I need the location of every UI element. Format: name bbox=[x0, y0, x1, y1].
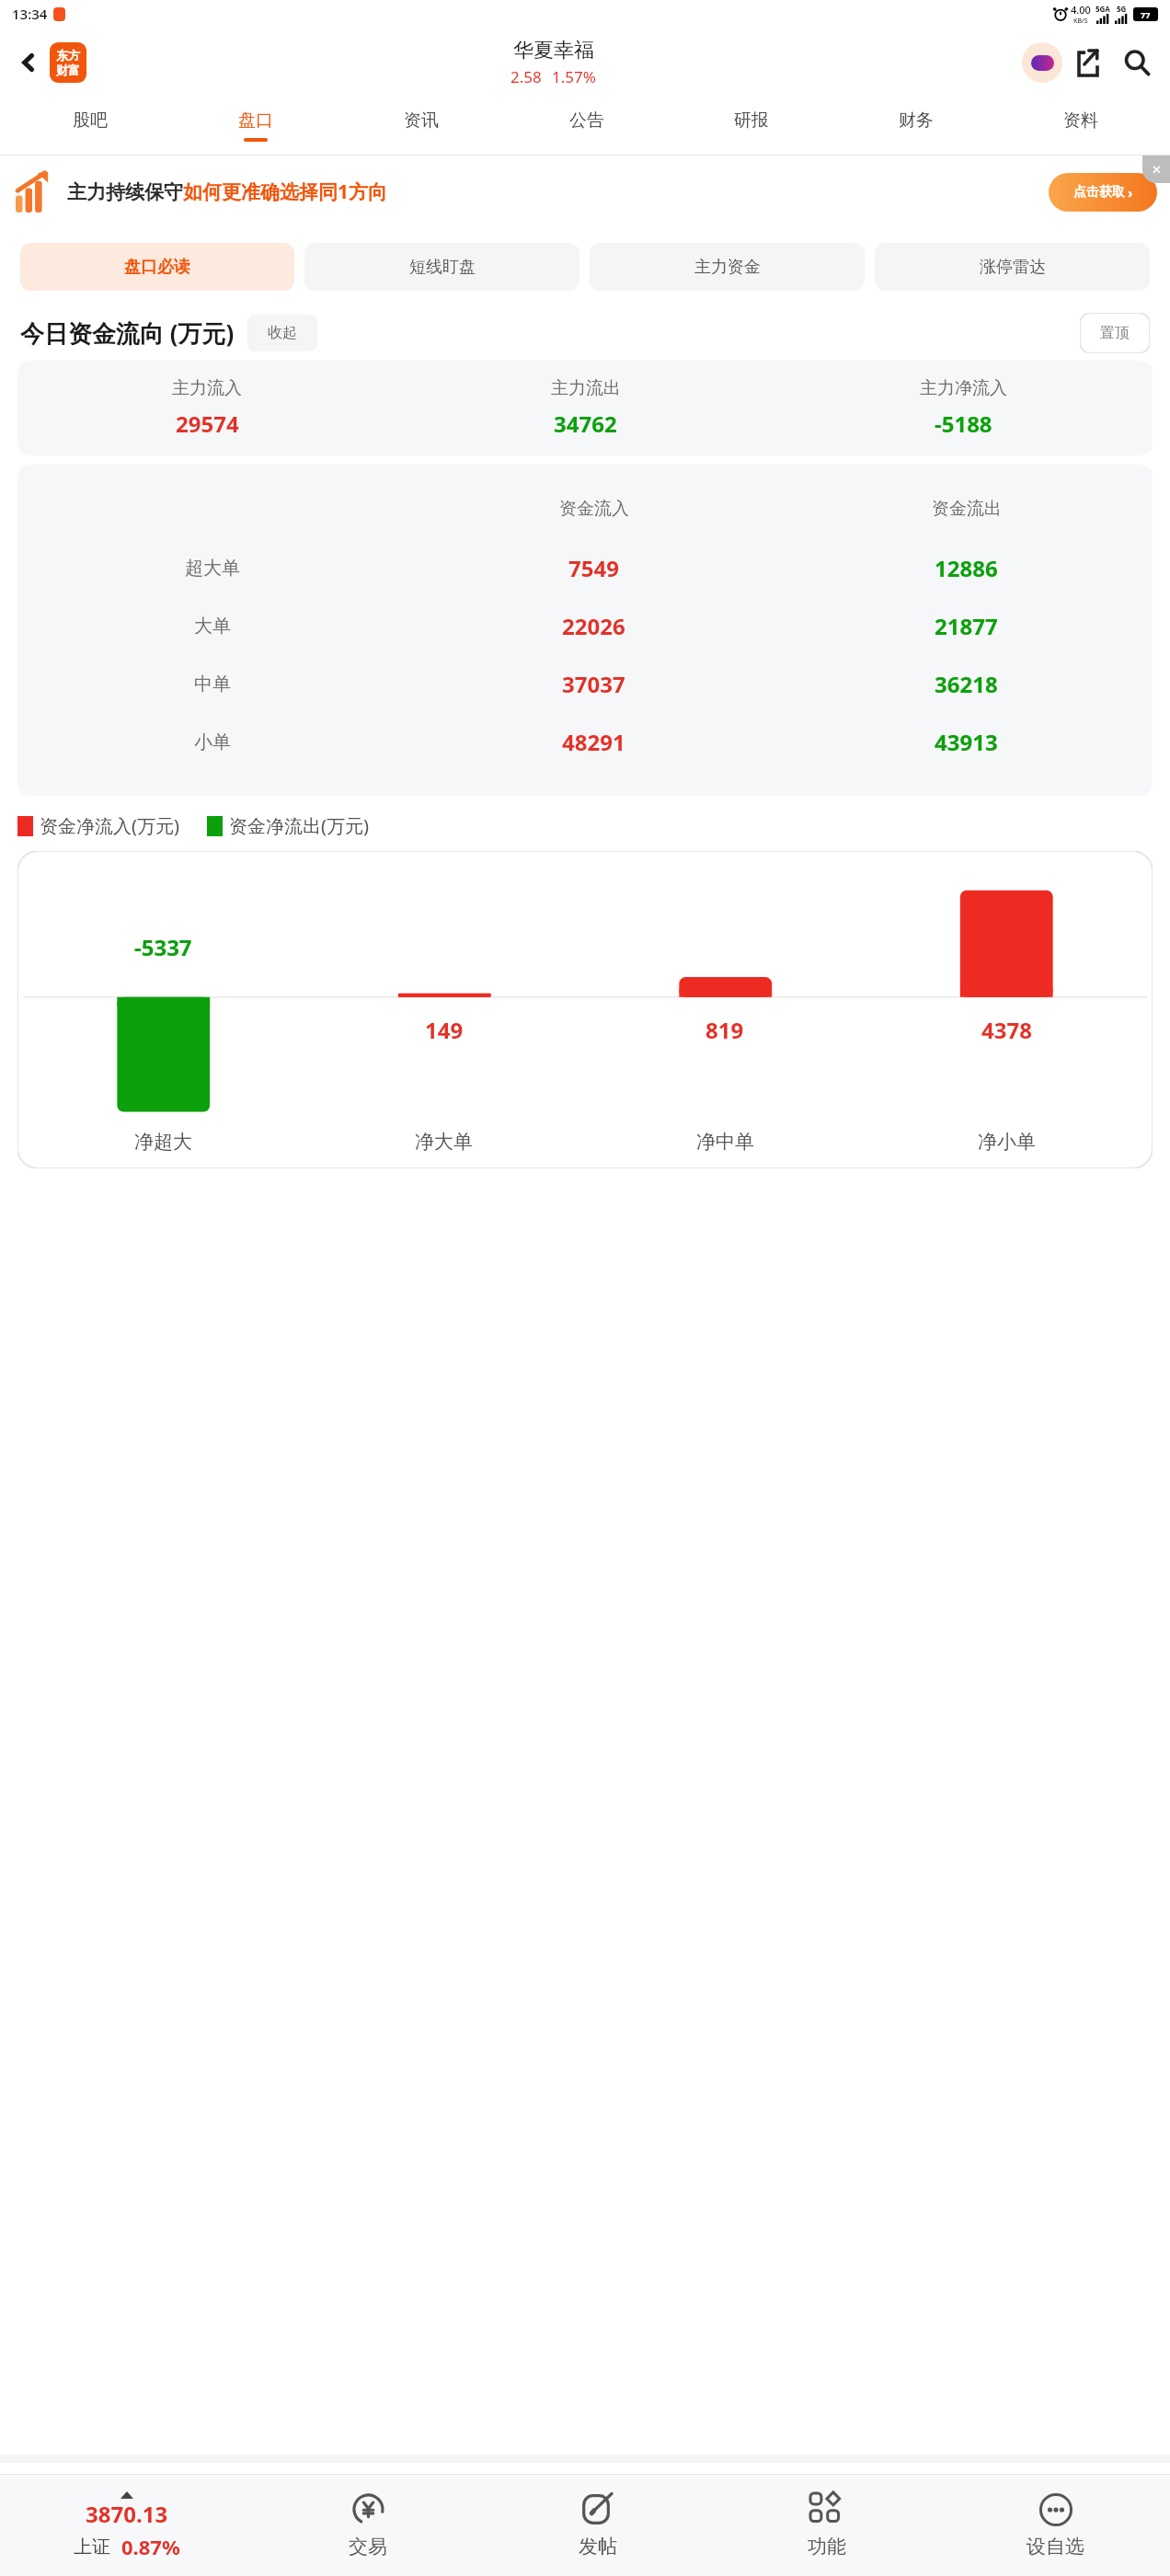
button[interactable]: 盘口 bbox=[173, 97, 338, 155]
staticText: 48291 bbox=[562, 727, 625, 757]
staticText: 12886 bbox=[935, 553, 998, 583]
staticText: 盘口 bbox=[238, 109, 273, 132]
staticText: 收起 bbox=[268, 324, 297, 342]
staticText: 29574 bbox=[176, 408, 239, 439]
staticText: KB/S bbox=[1073, 17, 1088, 26]
staticText: 资金净流出(万元) bbox=[229, 813, 369, 838]
staticText: 如何更准确选择同1方向 bbox=[183, 178, 388, 205]
button[interactable]: 发帖 bbox=[483, 2475, 712, 2576]
staticText: 净中单 bbox=[696, 1130, 754, 1154]
staticText: 小单 bbox=[194, 730, 231, 753]
staticText: ✕ bbox=[1152, 163, 1162, 177]
button[interactable]: 置顶 bbox=[1080, 313, 1150, 353]
button[interactable]: 研报 bbox=[669, 97, 833, 155]
staticText: 短线盯盘 bbox=[409, 257, 476, 278]
staticText: 东方 bbox=[56, 48, 80, 63]
staticText: 43913 bbox=[935, 727, 998, 757]
staticText: 13:34 bbox=[12, 5, 48, 23]
staticText: 5G bbox=[1117, 4, 1127, 14]
button[interactable]: 功能 bbox=[712, 2475, 941, 2576]
staticText: 36218 bbox=[935, 669, 998, 699]
button[interactable]: Search bbox=[1117, 42, 1157, 83]
staticText: 研报 bbox=[734, 109, 769, 132]
staticText: 公告 bbox=[569, 109, 604, 132]
staticText: 超大单 bbox=[185, 557, 240, 580]
staticText: 34762 bbox=[554, 408, 617, 439]
staticText: 77 bbox=[1141, 9, 1151, 20]
staticText: 点击获取 bbox=[1073, 184, 1125, 201]
button[interactable]: AI assistant bbox=[1021, 41, 1063, 84]
staticText: 3870.13 bbox=[86, 2499, 168, 2529]
staticText: 大单 bbox=[194, 615, 231, 638]
button[interactable]: East Money bbox=[50, 42, 86, 83]
staticText: 4.00 bbox=[1071, 3, 1091, 17]
button[interactable]: 涨停雷达 bbox=[875, 243, 1150, 291]
staticText: 资金流出 bbox=[932, 498, 1002, 520]
button[interactable]: Close ad bbox=[1142, 155, 1170, 183]
staticText: 4378 bbox=[981, 1015, 1032, 1045]
staticText: 置顶 bbox=[1100, 324, 1130, 342]
staticText: 财务 bbox=[899, 109, 934, 132]
button[interactable]: Back bbox=[13, 47, 44, 78]
button[interactable]: 点击获取 bbox=[1049, 173, 1157, 212]
staticText: 涨停雷达 bbox=[980, 257, 1046, 278]
staticText: 华夏幸福 bbox=[513, 38, 594, 63]
staticText: 股吧 bbox=[73, 109, 108, 132]
staticText: 上证 bbox=[74, 2536, 110, 2559]
staticText: -5188 bbox=[935, 408, 992, 439]
staticText: 净超大 bbox=[134, 1130, 192, 1154]
staticText: 2.58 bbox=[510, 66, 542, 87]
button[interactable]: 短线盯盘 bbox=[304, 243, 579, 291]
staticText: 设自选 bbox=[1027, 2535, 1084, 2559]
button[interactable]: 收起 bbox=[247, 315, 317, 351]
button[interactable]: 主力流入 bbox=[17, 361, 1153, 455]
staticText: 中单 bbox=[194, 673, 231, 696]
staticText: -5337 bbox=[134, 932, 192, 962]
button[interactable]: 公告 bbox=[504, 97, 669, 155]
staticText: 37037 bbox=[562, 669, 625, 699]
staticText: 主力资金 bbox=[694, 257, 761, 278]
button[interactable]: Share bbox=[1071, 42, 1111, 83]
button[interactable]: 盘口必读 bbox=[20, 243, 294, 291]
staticText: 0.87% bbox=[121, 2533, 180, 2560]
button[interactable]: 主力资金 bbox=[590, 243, 865, 291]
staticText: 交易 bbox=[349, 2535, 387, 2559]
button[interactable]: 交易 bbox=[253, 2475, 483, 2576]
button[interactable]: 设自选 bbox=[941, 2475, 1170, 2576]
staticText: 资金净流入(万元) bbox=[40, 813, 179, 838]
button[interactable]: 财务 bbox=[833, 97, 998, 155]
staticText: 财富 bbox=[56, 63, 80, 77]
staticText: 资料 bbox=[1063, 109, 1098, 132]
button[interactable]: 资金流入 bbox=[17, 465, 1153, 796]
staticText: 资讯 bbox=[404, 109, 439, 132]
button[interactable]: 资料 bbox=[998, 97, 1163, 155]
staticText: 资金流入 bbox=[559, 498, 629, 520]
staticText: 主力流入 bbox=[172, 377, 242, 399]
staticText: 主力持续保守 bbox=[67, 180, 183, 204]
staticText: 21877 bbox=[935, 611, 998, 641]
staticText: 盘口必读 bbox=[124, 257, 190, 278]
staticText: 7549 bbox=[568, 553, 619, 583]
button[interactable]: 3870.13 bbox=[0, 2475, 253, 2576]
staticText: 5GA bbox=[1095, 4, 1110, 14]
staticText: 主力流出 bbox=[551, 377, 621, 399]
staticText: 149 bbox=[425, 1015, 464, 1045]
staticText: 主力净流入 bbox=[920, 377, 1007, 399]
staticText: 净小单 bbox=[978, 1130, 1036, 1154]
staticText: 819 bbox=[705, 1015, 744, 1045]
staticText: 1.57% bbox=[552, 66, 596, 87]
staticText: 功能 bbox=[808, 2535, 846, 2559]
staticText: 发帖 bbox=[579, 2535, 617, 2559]
button[interactable]: 资讯 bbox=[338, 97, 504, 155]
staticText: 今日资金流向 (万元) bbox=[20, 316, 235, 350]
staticText: 22026 bbox=[562, 611, 625, 641]
staticText: 净大单 bbox=[415, 1130, 473, 1154]
button[interactable]: 股吧 bbox=[7, 97, 173, 155]
button[interactable]: -5337 bbox=[17, 851, 1153, 1168]
staticText: › bbox=[1128, 183, 1133, 201]
